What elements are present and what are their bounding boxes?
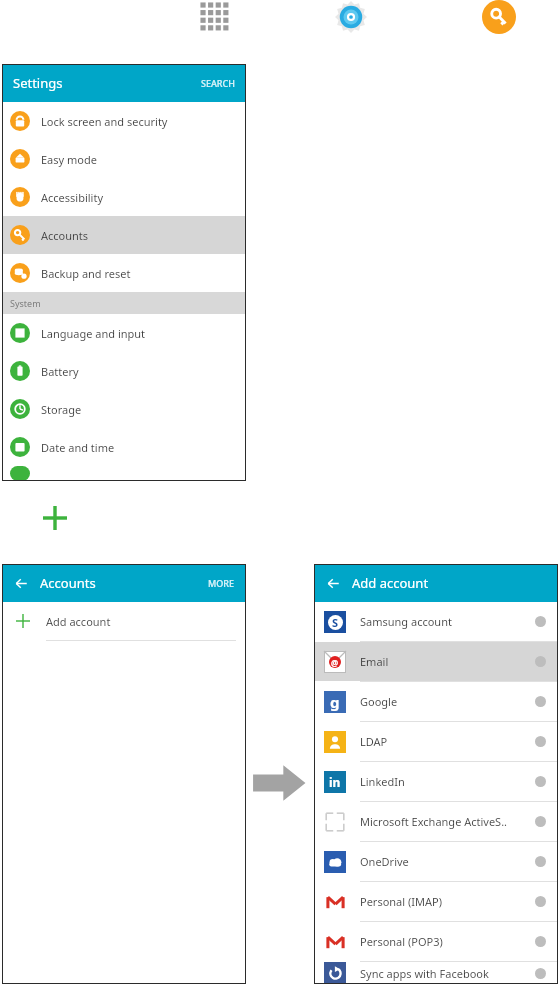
button[interactable]: Add account [2,602,246,640]
button[interactable]: @ [314,642,558,681]
staticText: Google [360,694,535,709]
button[interactable]: Easy mode [2,140,246,178]
button[interactable]: Date and time [2,428,246,466]
staticText: SEARCH [201,77,235,89]
staticText: Microsoft Exchange ActiveS.. [360,814,535,829]
button[interactable]: Battery [2,352,246,390]
staticText: Battery [41,364,79,379]
button[interactable]: Accessibility [2,178,246,216]
button[interactable]: SEARCH [201,77,235,89]
staticText: Storage [41,402,82,417]
staticText: Accounts [40,574,96,592]
button[interactable]: OneDrive [314,842,558,881]
staticText: Language and input [41,326,146,341]
other: Apps [198,0,232,34]
staticText: Personal (POP3) [360,934,535,949]
other: Accounts [482,0,516,34]
other: Add [40,503,70,533]
staticText: Easy mode [41,152,97,167]
staticText: Accessibility [41,190,104,205]
staticText: System [10,297,41,309]
staticText: in [329,774,341,790]
staticText: Backup and reset [41,266,131,281]
staticText: Lock screen and security [41,114,168,129]
button[interactable]: Personal (IMAP) [314,882,558,921]
button[interactable]: Personal (POP3) [314,922,558,961]
staticText: MORE [208,577,235,589]
button[interactable]: MORE [208,577,235,589]
other: Settings [334,0,368,34]
staticText: Accounts [41,228,89,243]
staticText: Add account [46,614,111,629]
staticText: Sync apps with Facebook [360,966,535,981]
button[interactable]: Sync apps with Facebook [314,962,558,984]
button[interactable]: g [314,682,558,721]
button[interactable]: LDAP [314,722,558,761]
button[interactable]: Back [324,574,342,592]
staticText: LinkedIn [360,774,535,789]
button[interactable]: Lock screen and security [2,102,246,140]
staticText: LDAP [360,734,535,749]
staticText: g [330,692,340,712]
staticText: Settings [13,74,63,92]
staticText: Samsung account [360,614,535,629]
staticText: Date and time [41,440,115,455]
staticText: S [332,615,339,630]
button[interactable]: Language and input [2,314,246,352]
button[interactable]: Backup and reset [2,254,246,292]
button[interactable]: Storage [2,390,246,428]
button[interactable]: in [314,762,558,801]
staticText: @ [331,657,339,668]
button[interactable]: S [314,602,558,641]
staticText: Personal (IMAP) [360,894,535,909]
staticText: Add account [352,574,429,592]
button[interactable]: Microsoft Exchange ActiveS.. [314,802,558,841]
button[interactable]: Accounts [2,216,246,254]
staticText: OneDrive [360,854,535,869]
staticText: Email [360,654,535,669]
button[interactable]: Back [12,574,30,592]
